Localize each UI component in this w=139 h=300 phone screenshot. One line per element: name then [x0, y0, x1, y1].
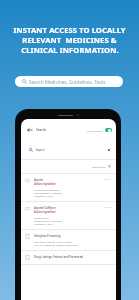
button[interactable]: Aspirin [21, 174, 116, 202]
button[interactable]: Search Medicines, Guidelines, Tools [15, 76, 123, 87]
staticText: A01.01 [104, 178, 111, 181]
staticText: Filter search [92, 165, 106, 168]
staticText: Antipyretic, Anti-... [34, 194, 55, 197]
staticText: Search Medicines, Guidelines, Tools [29, 79, 106, 85]
staticText: CLINICAL INFORMATION. [21, 45, 119, 55]
button[interactable]: Online search toggle [105, 128, 112, 132]
button[interactable]: Filter search [92, 165, 111, 168]
staticText: Aspirin/Caffeine [34, 206, 56, 210]
staticText: Salicylate Poisoning [34, 234, 61, 238]
staticText: Antipyretic, Anti-... [34, 222, 55, 225]
button[interactable]: Aspirin/Caffeine [21, 202, 116, 230]
staticText: A01.02 [104, 206, 111, 209]
staticText: Drug Listings: Enteral and Parenteral [34, 255, 84, 259]
staticText: Salicylic acid derivative [34, 188, 60, 191]
button[interactable]: Drug Listings: Enteral and Parenteral [21, 251, 116, 265]
staticText: Search [36, 128, 47, 132]
staticText: RELEVANT MEDICINES & [22, 35, 117, 45]
staticText: INSTANT ACCESS TO LOCALLY [13, 25, 126, 35]
staticText: Online search [87, 129, 103, 132]
button[interactable]: Back [27, 127, 33, 133]
button[interactable]: Salicylate Poisoning [21, 230, 116, 251]
staticText: Overnight Hospital - Items Lorem [34, 240, 72, 243]
staticText: Aspirin [34, 178, 44, 182]
staticText: Combination [34, 216, 49, 219]
staticText: Antirheumatic, Analgesic, [34, 219, 63, 222]
staticText: Active ingredient [34, 182, 56, 186]
button[interactable]: Clear search [107, 148, 111, 152]
staticText: Antirheumatic, Analgesic, [34, 191, 63, 194]
staticText: UTC/TIC Overnight Hospital Antidiureti [34, 243, 78, 246]
staticText: Active ingredient [34, 210, 56, 214]
staticText: Aspirin [36, 148, 45, 152]
